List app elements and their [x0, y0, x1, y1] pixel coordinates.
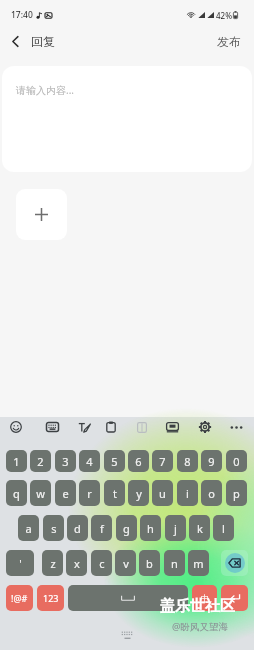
button[interactable]: 6: [128, 450, 149, 472]
staticText: o: [208, 486, 215, 501]
button[interactable]: Settings: [195, 417, 215, 437]
staticText: z: [50, 556, 56, 571]
button[interactable]: t: [104, 480, 125, 506]
staticText: @盼风又望海: [172, 620, 229, 633]
staticText: u: [159, 486, 166, 501]
button[interactable]: 2: [30, 450, 51, 472]
staticText: 8: [184, 454, 191, 469]
staticText: 17:40: [11, 9, 33, 21]
button[interactable]: 7: [152, 450, 173, 472]
button[interactable]: Add image: [16, 189, 67, 240]
button[interactable]: Enter: [221, 585, 248, 611]
staticText: w: [36, 486, 45, 501]
staticText: 发布: [217, 34, 241, 49]
button[interactable]: u: [152, 480, 173, 506]
button[interactable]: 1: [6, 450, 27, 472]
button[interactable]: Floating keyboard: [162, 417, 182, 437]
button[interactable]: 请输入内容...: [2, 66, 252, 172]
staticText: 6: [135, 454, 142, 469]
button[interactable]: Split screen: [132, 417, 152, 437]
button[interactable]: Clipboard: [101, 417, 121, 437]
button[interactable]: Back: [1, 24, 29, 58]
button[interactable]: r: [79, 480, 100, 506]
button[interactable]: 中: [192, 585, 217, 611]
button[interactable]: Hide keyboard: [117, 628, 137, 642]
button[interactable]: 3: [55, 450, 76, 472]
button[interactable]: m: [188, 550, 209, 576]
button[interactable]: d: [67, 515, 88, 541]
button[interactable]: 8: [177, 450, 198, 472]
button[interactable]: 5: [104, 450, 125, 472]
staticText: 5: [111, 454, 118, 469]
staticText: b: [146, 556, 153, 571]
button[interactable]: g: [116, 515, 137, 541]
button[interactable]: Backspace: [221, 550, 248, 576]
staticText: t: [113, 486, 117, 501]
staticText: 请输入内容...: [16, 83, 75, 97]
button[interactable]: n: [164, 550, 185, 576]
staticText: 42%: [216, 10, 232, 21]
staticText: s: [51, 521, 57, 536]
staticText: ': [19, 556, 22, 571]
staticText: 9: [208, 454, 215, 469]
button[interactable]: l: [213, 515, 234, 541]
button[interactable]: v: [115, 550, 136, 576]
button[interactable]: 回复: [31, 24, 61, 58]
staticText: 2: [37, 454, 44, 469]
button[interactable]: x: [66, 550, 87, 576]
button[interactable]: h: [140, 515, 161, 541]
staticText: c: [99, 556, 105, 571]
button[interactable]: Space: [68, 585, 188, 611]
staticText: 中: [201, 593, 209, 603]
staticText: p: [233, 486, 240, 501]
button[interactable]: 4: [79, 450, 100, 472]
button[interactable]: f: [91, 515, 112, 541]
button[interactable]: b: [139, 550, 160, 576]
button[interactable]: c: [91, 550, 112, 576]
button[interactable]: Handwriting: [74, 417, 94, 437]
staticText: r: [87, 486, 92, 501]
button[interactable]: z: [42, 550, 63, 576]
staticText: h: [147, 521, 154, 536]
staticText: d: [74, 521, 81, 536]
button[interactable]: 0: [226, 450, 247, 472]
button[interactable]: w: [30, 480, 51, 506]
button[interactable]: ': [6, 550, 34, 576]
button[interactable]: i: [177, 480, 198, 506]
staticText: m: [193, 556, 204, 571]
button[interactable]: Keyboard: [42, 417, 62, 437]
button[interactable]: p: [226, 480, 247, 506]
button[interactable]: e: [55, 480, 76, 506]
button[interactable]: k: [189, 515, 210, 541]
staticText: 盖乐世社区: [160, 597, 235, 616]
button[interactable]: o: [201, 480, 222, 506]
button[interactable]: a: [18, 515, 39, 541]
staticText: g: [123, 521, 130, 536]
button[interactable]: 123: [37, 585, 64, 611]
button[interactable]: More options: [226, 417, 246, 437]
staticText: k: [197, 521, 203, 536]
button[interactable]: !@#: [6, 585, 33, 611]
button[interactable]: s: [43, 515, 64, 541]
staticText: !@#: [11, 592, 28, 604]
button[interactable]: j: [165, 515, 186, 541]
staticText: 3: [62, 454, 69, 469]
button[interactable]: 9: [201, 450, 222, 472]
staticText: x: [74, 556, 80, 571]
staticText: 1: [13, 454, 20, 469]
button[interactable]: y: [128, 480, 149, 506]
button[interactable]: 发布: [211, 24, 247, 58]
staticText: q: [13, 486, 20, 501]
staticText: n: [171, 556, 178, 571]
button[interactable]: q: [6, 480, 27, 506]
staticText: a: [25, 521, 32, 536]
staticText: j: [174, 521, 177, 536]
staticText: i: [186, 486, 189, 501]
button[interactable]: Emoji: [6, 417, 26, 437]
staticText: 4: [86, 454, 93, 469]
staticText: 123: [43, 592, 59, 604]
staticText: 回复: [31, 34, 55, 49]
staticText: 7: [159, 454, 166, 469]
staticText: 0: [233, 454, 240, 469]
staticText: e: [62, 486, 69, 501]
